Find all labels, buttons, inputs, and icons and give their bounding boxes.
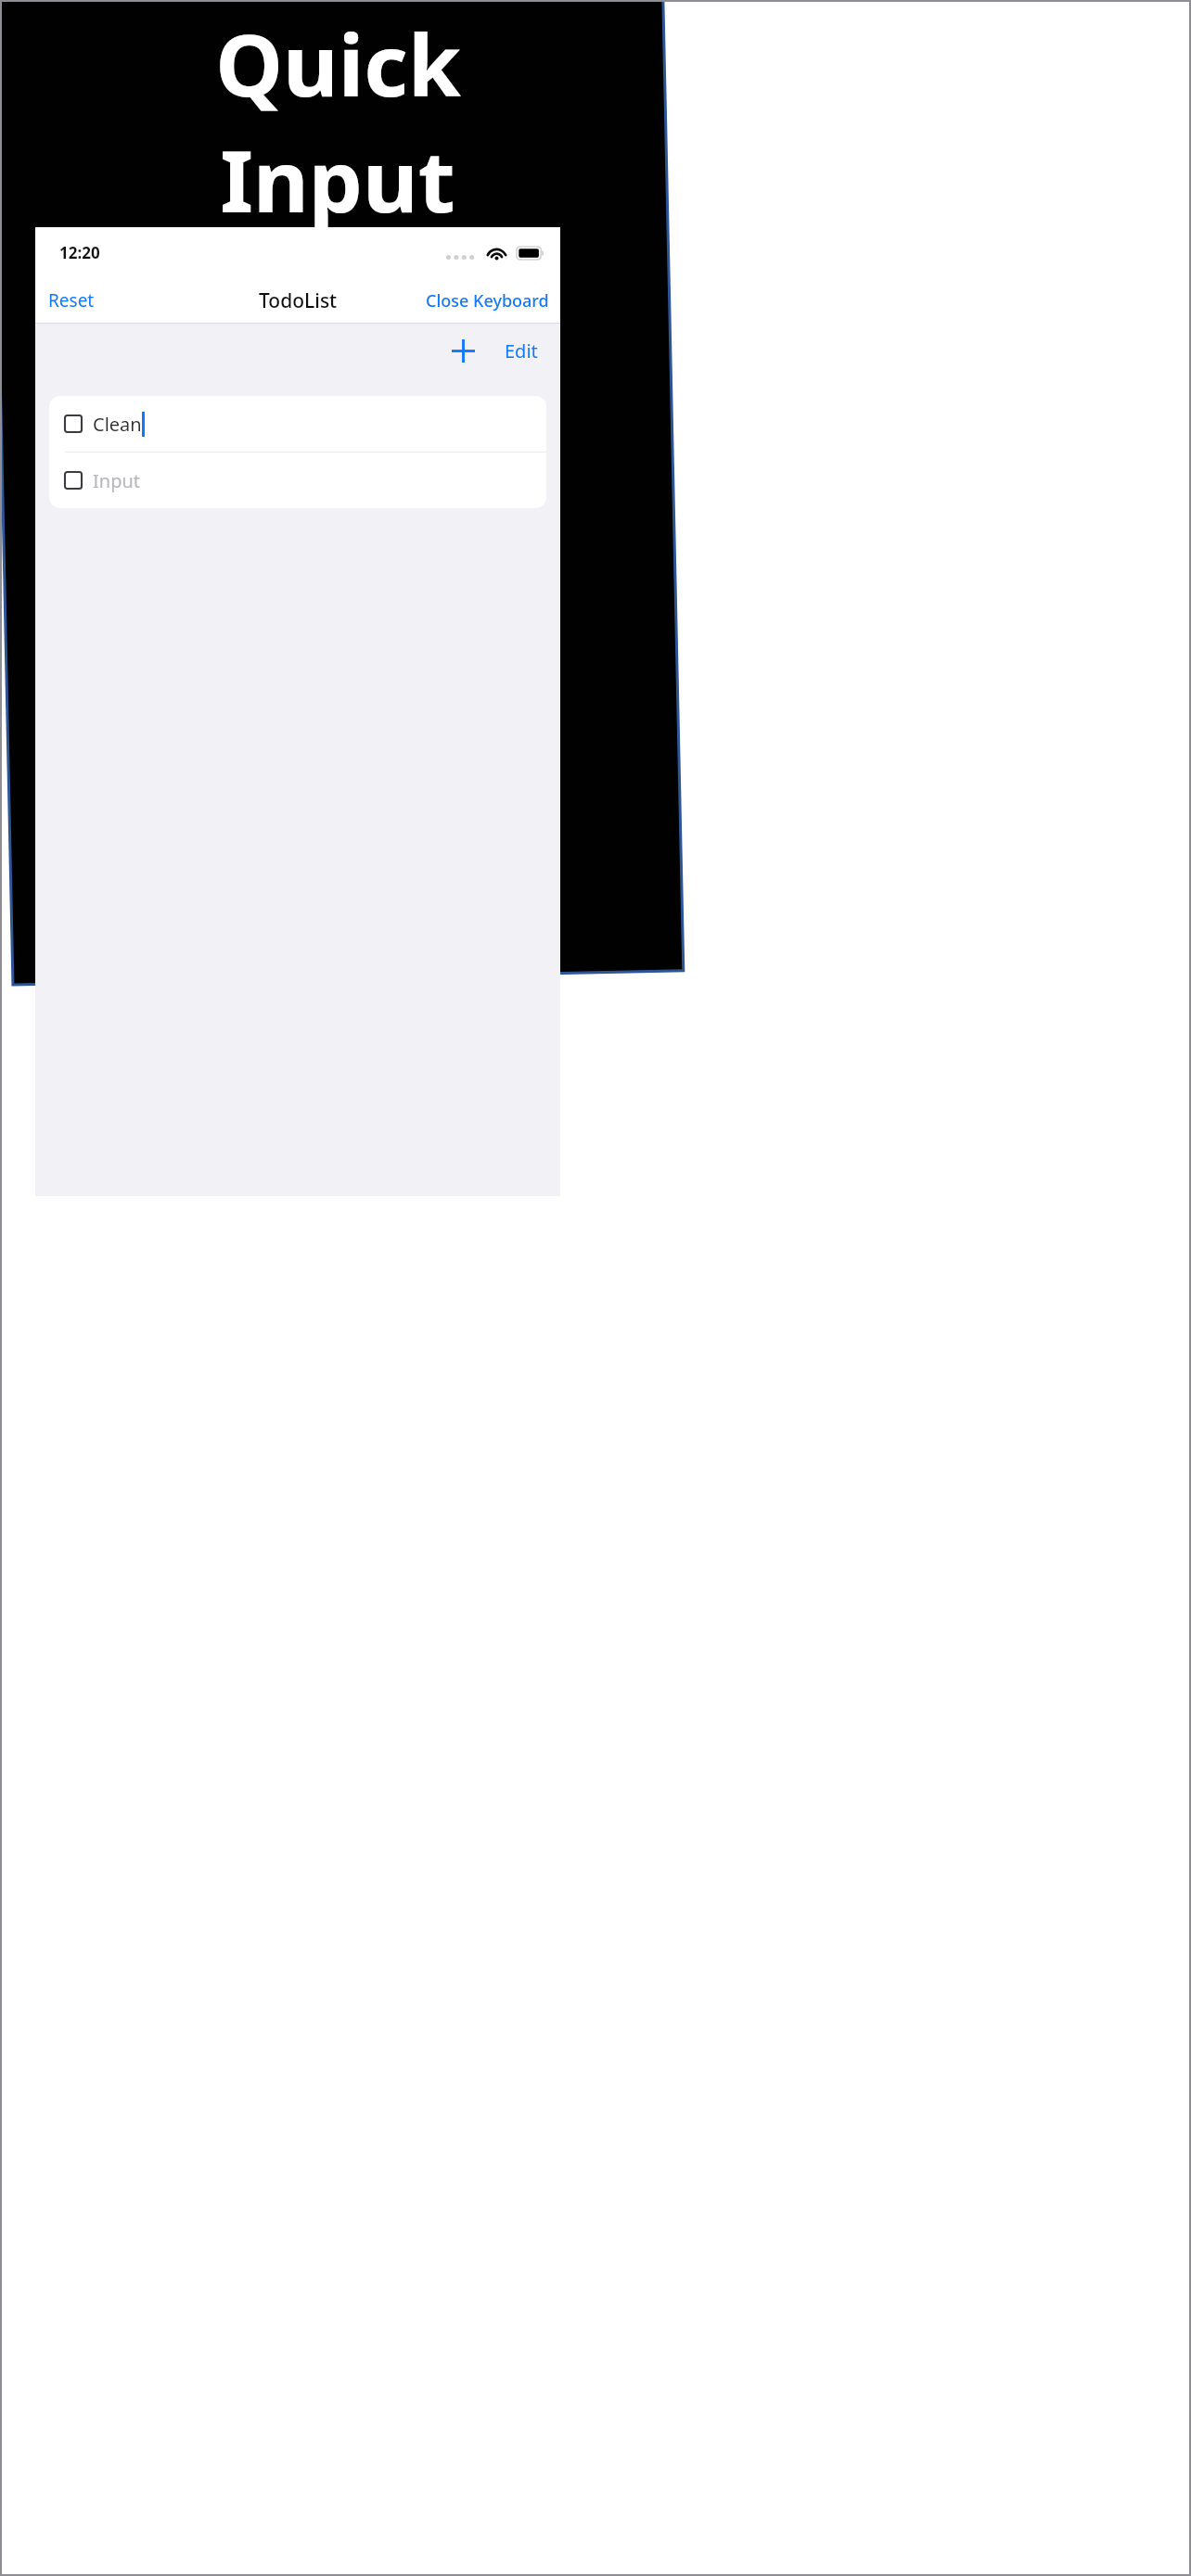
staticText: Edit [505,338,538,363]
button[interactable]: Add item [442,329,484,372]
staticText: Reset [48,288,95,312]
staticText: TodoList [259,287,338,314]
staticText: Clean [93,412,142,437]
button[interactable]: Edit [497,331,545,371]
staticText: 12:20 [59,242,100,263]
staticText: Input [220,121,455,237]
button[interactable]: Toggle Clean [49,396,546,452]
other: Toggle Input [65,472,82,489]
button[interactable]: Close Keyboard [415,282,560,320]
other: Toggle Clean [65,415,82,432]
button[interactable]: Toggle Input [49,453,546,508]
staticText: Close Keyboard [426,289,549,312]
staticText: Quick [215,6,461,121]
button[interactable]: Reset [35,281,108,320]
staticText: Input [93,468,141,493]
